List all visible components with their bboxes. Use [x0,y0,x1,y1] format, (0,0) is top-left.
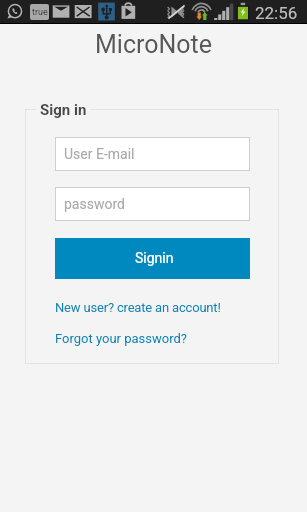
staticText: Signin [135,250,174,266]
button[interactable]: User E-mail [55,137,250,171]
button[interactable]: Signin [55,238,250,279]
staticText: User E-mail [64,146,135,162]
button[interactable]: Forgot your password? [55,331,187,346]
staticText: MicroNote [95,30,213,59]
staticText: Sign in [40,101,87,119]
button[interactable]: password [55,187,250,221]
staticText: true [32,7,48,18]
staticText: Forgot your password? [55,331,187,346]
staticText: password [64,196,125,212]
button[interactable]: Sign in [40,101,87,119]
staticText: 22:56 [255,3,298,23]
staticText: New user? create an account! [55,300,221,315]
button[interactable]: New user? create an account! [55,300,221,315]
